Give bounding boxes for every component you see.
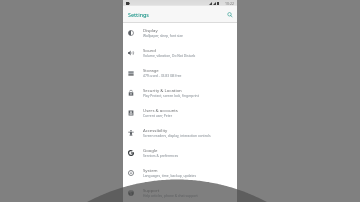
button[interactable]: Display bbox=[123, 23, 237, 43]
staticText: Storage bbox=[143, 67, 159, 73]
staticText: Settings bbox=[128, 11, 149, 18]
button[interactable]: Storage bbox=[123, 63, 237, 83]
staticText: Users & accounts bbox=[143, 107, 178, 113]
staticText: Screen readers, display, interaction con… bbox=[143, 133, 211, 137]
staticText: Security & Location bbox=[143, 87, 182, 93]
button[interactable]: Security & Location bbox=[123, 83, 237, 103]
staticText: Current user, Peter bbox=[143, 113, 173, 117]
staticText: Display bbox=[143, 27, 158, 33]
staticText: Services & preferences bbox=[143, 153, 179, 157]
button[interactable]: Search bbox=[226, 11, 233, 18]
button[interactable]: Users & accounts bbox=[123, 103, 237, 123]
staticText: 47% used - 33.83 GB free bbox=[143, 73, 182, 77]
staticText: Volume, vibration, Do Not Disturb bbox=[143, 53, 196, 57]
button[interactable]: Support bbox=[123, 183, 237, 202]
staticText: Play Protect, screen lock, fingerprint bbox=[143, 93, 199, 97]
staticText: Sound bbox=[143, 47, 156, 53]
button[interactable]: Sound bbox=[123, 43, 237, 63]
staticText: Help articles, phone & chat support bbox=[143, 193, 198, 197]
staticText: Accessibility bbox=[143, 127, 168, 133]
button[interactable]: Accessibility bbox=[123, 123, 237, 143]
staticText: System bbox=[143, 167, 158, 173]
staticText: Google bbox=[143, 147, 158, 153]
staticText: Languages, time, backup, updates bbox=[143, 173, 197, 177]
button[interactable]: Google bbox=[123, 143, 237, 163]
staticText: Support bbox=[143, 187, 160, 193]
button[interactable]: System bbox=[123, 163, 237, 183]
staticText: Wallpaper, sleep, font size bbox=[143, 33, 183, 37]
staticText: 10:22 bbox=[225, 1, 234, 6]
